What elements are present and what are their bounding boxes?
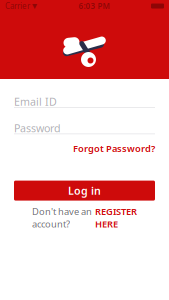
staticText: Don't have an account? (32, 205, 92, 230)
staticText: Carrier (5, 1, 30, 11)
button[interactable]: Log in (14, 181, 155, 201)
staticText: ▼ (30, 2, 37, 10)
staticText: REGISTER HERE (95, 205, 137, 230)
button[interactable]: Forgot Password? (73, 140, 155, 157)
staticText: 6:03 PM (78, 1, 109, 11)
button[interactable]: Don't have an account? (14, 212, 155, 224)
staticText: Password (14, 121, 61, 135)
staticText: Log in (68, 183, 101, 198)
staticText: Forgot Password? (73, 142, 155, 155)
staticText: Email ID (14, 94, 57, 109)
